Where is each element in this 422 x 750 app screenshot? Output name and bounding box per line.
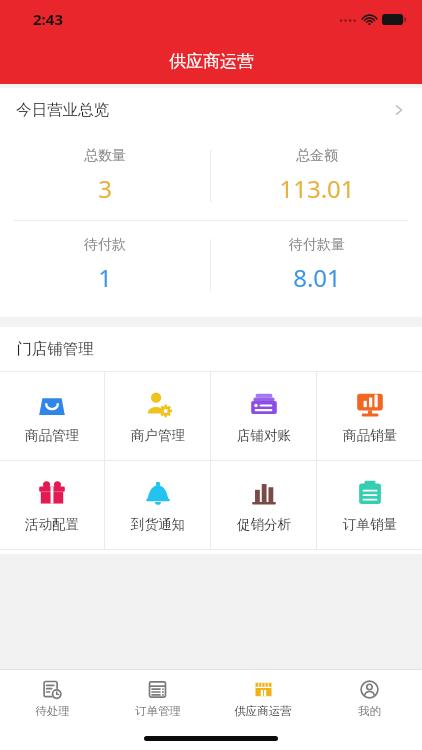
button[interactable]: 待付款量 bbox=[211, 221, 422, 309]
button[interactable]: 待处理 bbox=[0, 670, 105, 726]
button[interactable]: 商户管理 bbox=[105, 372, 210, 460]
button[interactable]: 促销分析 bbox=[211, 461, 316, 549]
staticText: 2:43 bbox=[33, 9, 63, 29]
staticText: 订单销量 bbox=[343, 516, 397, 533]
button[interactable]: 到货通知 bbox=[105, 461, 210, 549]
staticText: 总金额 bbox=[296, 147, 338, 165]
staticText: 113.01 bbox=[279, 172, 355, 205]
staticText: 促销分析 bbox=[237, 516, 291, 533]
staticText: 总数量 bbox=[84, 147, 126, 165]
button[interactable]: 订单管理 bbox=[105, 670, 210, 726]
button[interactable]: 我的 bbox=[316, 670, 422, 726]
other: 查看详情 bbox=[392, 103, 406, 117]
button[interactable]: 活动配置 bbox=[0, 461, 104, 549]
button[interactable]: 今日营业总览 bbox=[0, 88, 422, 132]
button[interactable]: 供应商运营 bbox=[210, 670, 316, 726]
staticText: 到货通知 bbox=[131, 516, 185, 533]
staticText: 商品销量 bbox=[343, 427, 397, 444]
staticText: 1 bbox=[98, 261, 112, 294]
staticText: 3 bbox=[98, 172, 112, 205]
staticText: 店铺对账 bbox=[237, 427, 291, 444]
button[interactable]: 商品管理 bbox=[0, 372, 104, 460]
staticText: 活动配置 bbox=[25, 516, 79, 533]
staticText: 订单管理 bbox=[135, 704, 181, 718]
staticText: 待付款 bbox=[84, 236, 126, 254]
staticText: 商户管理 bbox=[131, 427, 185, 444]
button[interactable]: 待付款 bbox=[0, 221, 210, 309]
staticText: 供应商运营 bbox=[169, 51, 254, 72]
staticText: 我的 bbox=[358, 704, 381, 718]
staticText: 供应商运营 bbox=[234, 704, 292, 718]
staticText: 待处理 bbox=[35, 704, 70, 718]
button[interactable]: 商品销量 bbox=[317, 372, 422, 460]
button[interactable]: 订单销量 bbox=[317, 461, 422, 549]
button[interactable]: 店铺对账 bbox=[211, 372, 316, 460]
staticText: 今日营业总览 bbox=[16, 100, 109, 120]
staticText: 8.01 bbox=[293, 261, 341, 294]
button[interactable]: 总数量 bbox=[0, 132, 210, 220]
staticText: 待付款量 bbox=[289, 236, 345, 254]
staticText: 门店铺管理 bbox=[16, 339, 94, 359]
button[interactable]: 总金额 bbox=[211, 132, 422, 220]
staticText: 商品管理 bbox=[25, 427, 79, 444]
